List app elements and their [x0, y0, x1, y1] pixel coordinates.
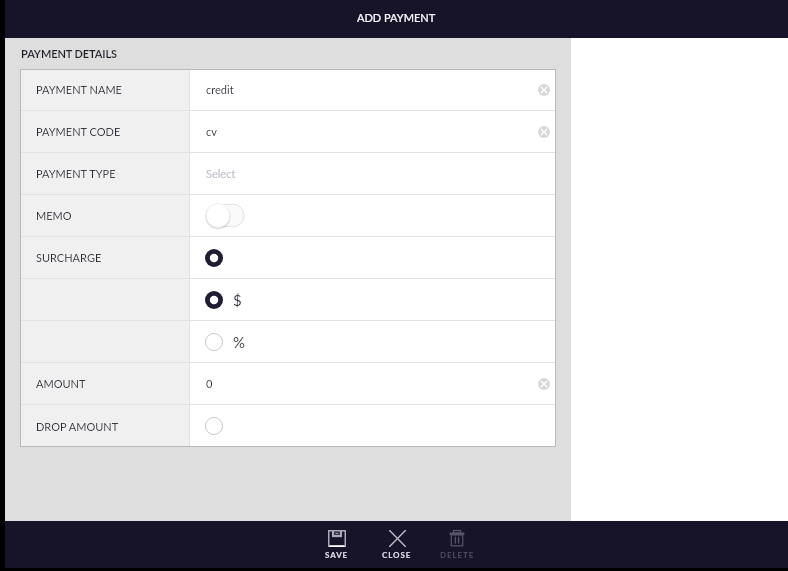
button[interactable]: Clear text [533, 121, 554, 142]
button[interactable]: PAYMENT TYPE [20, 153, 556, 195]
staticText: % [233, 333, 246, 351]
staticText: DROP AMOUNT [36, 420, 119, 433]
button[interactable]: Clear text [533, 373, 554, 394]
button[interactable]: DROP AMOUNT [20, 405, 556, 447]
button[interactable]: Unselected option [20, 321, 556, 363]
staticText: PAYMENT NAME [36, 83, 122, 96]
button[interactable]: Unselected option [203, 415, 225, 437]
staticText: PAYMENT CODE [36, 125, 121, 138]
staticText: DELETE [440, 550, 475, 560]
staticText: SURCHARGE [36, 251, 102, 264]
button[interactable]: Selected option [203, 247, 225, 269]
button[interactable]: CLOSE [367, 521, 427, 568]
button[interactable]: Unselected option [203, 331, 225, 353]
button[interactable]: SURCHARGE [20, 237, 556, 279]
button[interactable]: Selected option [20, 279, 556, 321]
staticText: $ [233, 291, 242, 309]
button[interactable]: AMOUNT [20, 363, 556, 405]
button[interactable]: PAYMENT CODE [20, 111, 556, 153]
staticText: SAVE [325, 550, 349, 560]
staticText: MEMO [36, 209, 72, 222]
button[interactable]: Selected option [203, 289, 225, 311]
staticText: cv [206, 125, 217, 138]
button[interactable]: DELETE [427, 521, 487, 568]
staticText: ADD PAYMENT [357, 11, 436, 24]
button[interactable]: Clear text [533, 79, 554, 100]
staticText: credit [206, 83, 234, 96]
staticText: PAYMENT DETAILS [21, 47, 117, 60]
button[interactable]: Memo toggle, off [205, 203, 245, 228]
button[interactable]: PAYMENT NAME [20, 69, 556, 111]
staticText: PAYMENT TYPE [36, 167, 116, 180]
button[interactable]: SAVE [307, 521, 367, 568]
staticText: CLOSE [382, 550, 412, 560]
button[interactable]: MEMO [20, 195, 556, 237]
staticText: AMOUNT [36, 377, 86, 390]
staticText: 0 [206, 377, 213, 390]
staticText: Select [206, 167, 236, 180]
